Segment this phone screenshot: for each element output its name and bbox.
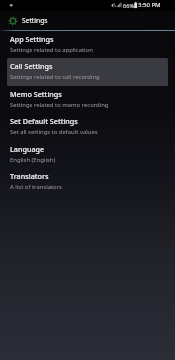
staticText: Call Settings xyxy=(10,61,169,71)
staticText: English (English) xyxy=(10,156,175,164)
staticText: Settings related to call recording xyxy=(10,73,175,81)
button[interactable]: Set Default Settings xyxy=(0,113,175,141)
button[interactable]: Language xyxy=(0,141,175,169)
staticText: Settings related to application xyxy=(10,46,175,54)
button[interactable]: Settings xyxy=(0,11,175,29)
button[interactable]: Translators xyxy=(0,168,175,196)
staticText: A list of translators xyxy=(10,183,175,191)
staticText: Language xyxy=(10,144,169,154)
staticText: App Settings xyxy=(10,34,169,44)
button[interactable]: App Settings xyxy=(0,31,175,59)
staticText: 3:50 PM xyxy=(138,1,161,9)
staticText: Settings related to memo recording xyxy=(10,101,175,109)
staticText: Translators xyxy=(10,171,169,181)
staticText: Set Default Settings xyxy=(10,116,169,126)
staticText: 66% xyxy=(123,2,135,10)
staticText: Set all settings to default values xyxy=(10,128,175,136)
staticText: Memo Settings xyxy=(10,89,169,99)
button[interactable]: Memo Settings xyxy=(0,86,175,114)
other: Settings xyxy=(7,15,18,26)
staticText: Settings xyxy=(22,16,48,25)
button[interactable]: Call Settings xyxy=(0,58,175,86)
